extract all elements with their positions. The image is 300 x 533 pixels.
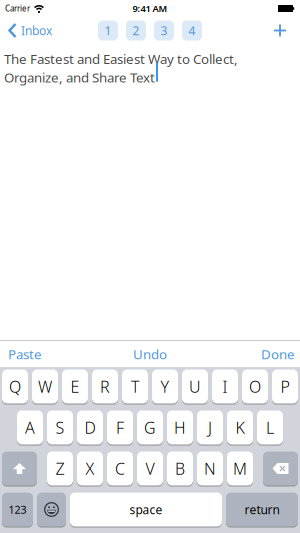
- button[interactable]: A: [17, 410, 43, 444]
- staticText: Paste: [8, 345, 42, 363]
- button[interactable]: W: [32, 369, 58, 403]
- button[interactable]: R: [92, 369, 118, 403]
- staticText: S: [55, 417, 64, 438]
- button[interactable]: Numbers: [2, 492, 33, 526]
- button[interactable]: Paste: [0, 345, 42, 363]
- staticText: G: [144, 417, 156, 438]
- button[interactable]: L: [257, 410, 283, 444]
- staticText: Undo: [133, 345, 167, 363]
- staticText: K: [235, 417, 244, 438]
- button[interactable]: V: [137, 451, 163, 485]
- staticText: U: [189, 376, 201, 397]
- staticText: O: [249, 376, 261, 397]
- button[interactable]: M: [227, 451, 253, 485]
- staticText: F: [116, 417, 124, 438]
- staticText: R: [100, 376, 110, 397]
- staticText: 4: [188, 22, 195, 38]
- staticText: M: [233, 458, 247, 479]
- button[interactable]: 3: [154, 20, 174, 40]
- button[interactable]: K: [227, 410, 253, 444]
- staticText: Z: [55, 458, 64, 479]
- button[interactable]: New Draft: [274, 24, 300, 36]
- button[interactable]: I: [212, 369, 238, 403]
- staticText: I: [222, 376, 227, 397]
- staticText: P: [280, 376, 289, 397]
- staticText: B: [175, 458, 185, 479]
- button[interactable]: space: [70, 492, 222, 526]
- button[interactable]: F: [107, 410, 133, 444]
- staticText: 9:41 AM: [132, 2, 167, 15]
- staticText: A: [25, 417, 35, 438]
- button[interactable]: Shift: [2, 451, 37, 485]
- button[interactable]: Z: [47, 451, 73, 485]
- staticText: W: [38, 376, 52, 397]
- staticText: H: [174, 417, 186, 438]
- staticText: return: [244, 501, 279, 517]
- staticText: The Fastest and Easiest Way to Collect,: [4, 50, 238, 68]
- button[interactable]: U: [182, 369, 208, 403]
- button[interactable]: J: [197, 410, 223, 444]
- button[interactable]: G: [137, 410, 163, 444]
- staticText: L: [266, 417, 274, 438]
- button[interactable]: 4: [182, 20, 202, 40]
- button[interactable]: C: [107, 451, 133, 485]
- button[interactable]: B: [167, 451, 193, 485]
- staticText: 3: [160, 22, 167, 38]
- staticText: N: [204, 458, 216, 479]
- staticText: Done: [261, 345, 295, 363]
- button[interactable]: Q: [2, 369, 28, 403]
- staticText: T: [131, 376, 139, 397]
- staticText: J: [208, 417, 212, 438]
- button[interactable]: 2: [126, 20, 146, 40]
- staticText: X: [85, 458, 94, 479]
- staticText: Inbox: [21, 22, 52, 38]
- button[interactable]: Delete: [263, 451, 298, 485]
- staticText: 123: [8, 502, 26, 517]
- staticText: V: [145, 458, 154, 479]
- button[interactable]: H: [167, 410, 193, 444]
- staticText: E: [70, 376, 79, 397]
- staticText: Organize, and Share Text: [4, 68, 155, 86]
- button[interactable]: Emoji: [37, 492, 66, 526]
- button[interactable]: Y: [152, 369, 178, 403]
- button[interactable]: S: [47, 410, 73, 444]
- staticText: Y: [160, 376, 169, 397]
- button[interactable]: N: [197, 451, 223, 485]
- button[interactable]: X: [77, 451, 103, 485]
- button[interactable]: T: [122, 369, 148, 403]
- button[interactable]: P: [272, 369, 298, 403]
- staticText: Q: [9, 376, 21, 397]
- button[interactable]: D: [77, 410, 103, 444]
- button[interactable]: 1: [98, 20, 118, 40]
- button[interactable]: Done: [261, 345, 300, 363]
- staticText: D: [84, 417, 95, 438]
- button[interactable]: return: [226, 492, 298, 526]
- staticText: Carrier: [5, 3, 30, 14]
- staticText: C: [115, 458, 125, 479]
- button[interactable]: O: [242, 369, 268, 403]
- button[interactable]: E: [62, 369, 88, 403]
- staticText: space: [129, 501, 162, 517]
- staticText: 1: [104, 22, 111, 38]
- button[interactable]: Undo: [133, 345, 167, 363]
- button[interactable]: Inbox: [0, 22, 52, 38]
- staticText: 2: [132, 22, 139, 38]
